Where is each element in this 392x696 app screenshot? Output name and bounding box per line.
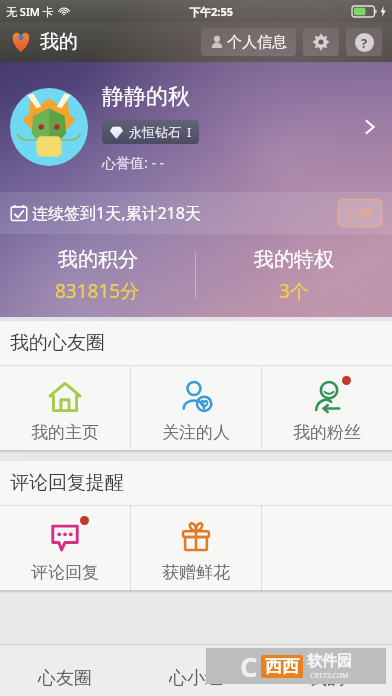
button[interactable]: 心小组 [130,644,261,696]
button[interactable]: 我的主页 [0,366,130,450]
staticText: 我的心友圈 [10,331,105,355]
button[interactable]: 我的特权 [196,234,392,317]
staticText: I [187,123,192,141]
staticText: 我的粉丝 [293,422,361,443]
staticText: 心小组 [169,667,223,690]
staticText: 心誉值: - - [102,153,165,172]
staticText: 下午2:55 [189,4,233,19]
staticText: 获赠鲜花 [162,562,230,583]
button[interactable]: 连续签到1天,累计218天 [0,192,392,234]
staticText: C [240,648,258,684]
staticText: 西西 [265,656,299,677]
button[interactable]: 关注的人 [131,366,261,450]
staticText: 我的 [40,30,78,54]
staticText: CR173.COM [310,671,349,681]
button[interactable]: 心友圈 [0,644,130,696]
staticText: 连续签到1天,累计218天 [32,202,201,224]
staticText: 已签 [346,205,374,223]
button[interactable]: 我的 [261,644,392,696]
button[interactable]: Settings [303,28,339,56]
staticText: 3个 [279,278,309,304]
staticText: 我的特权 [254,247,334,272]
staticText: 关注的人 [162,422,230,443]
button[interactable]: 个人信息 [201,28,296,56]
button[interactable]: 我的粉丝 [262,366,392,450]
button[interactable]: 评论回复 [0,506,130,590]
staticText: 831815分 [55,278,140,304]
staticText: 我的主页 [31,422,99,443]
staticText: 评论回复 [31,562,99,583]
button[interactable]: 已签 [338,200,382,227]
staticText: 心友圈 [38,667,92,690]
staticText: 个人信息 [227,33,287,52]
staticText: 我的积分 [58,247,138,272]
staticText: 我的 [309,667,345,690]
staticText: 无 SIM 卡 [6,4,54,19]
staticText: ? [361,34,368,52]
staticText: 永恒钻石 [129,124,181,140]
button[interactable]: 获赠鲜花 [131,506,261,590]
button[interactable]: 我的积分 [0,234,195,317]
button[interactable]: Help [346,28,382,56]
staticText: 软件园 [307,652,352,671]
button[interactable]: 静静的秋 [0,62,392,192]
staticText: 静静的秋 [102,83,190,111]
staticText: 评论回复提醒 [10,471,124,495]
